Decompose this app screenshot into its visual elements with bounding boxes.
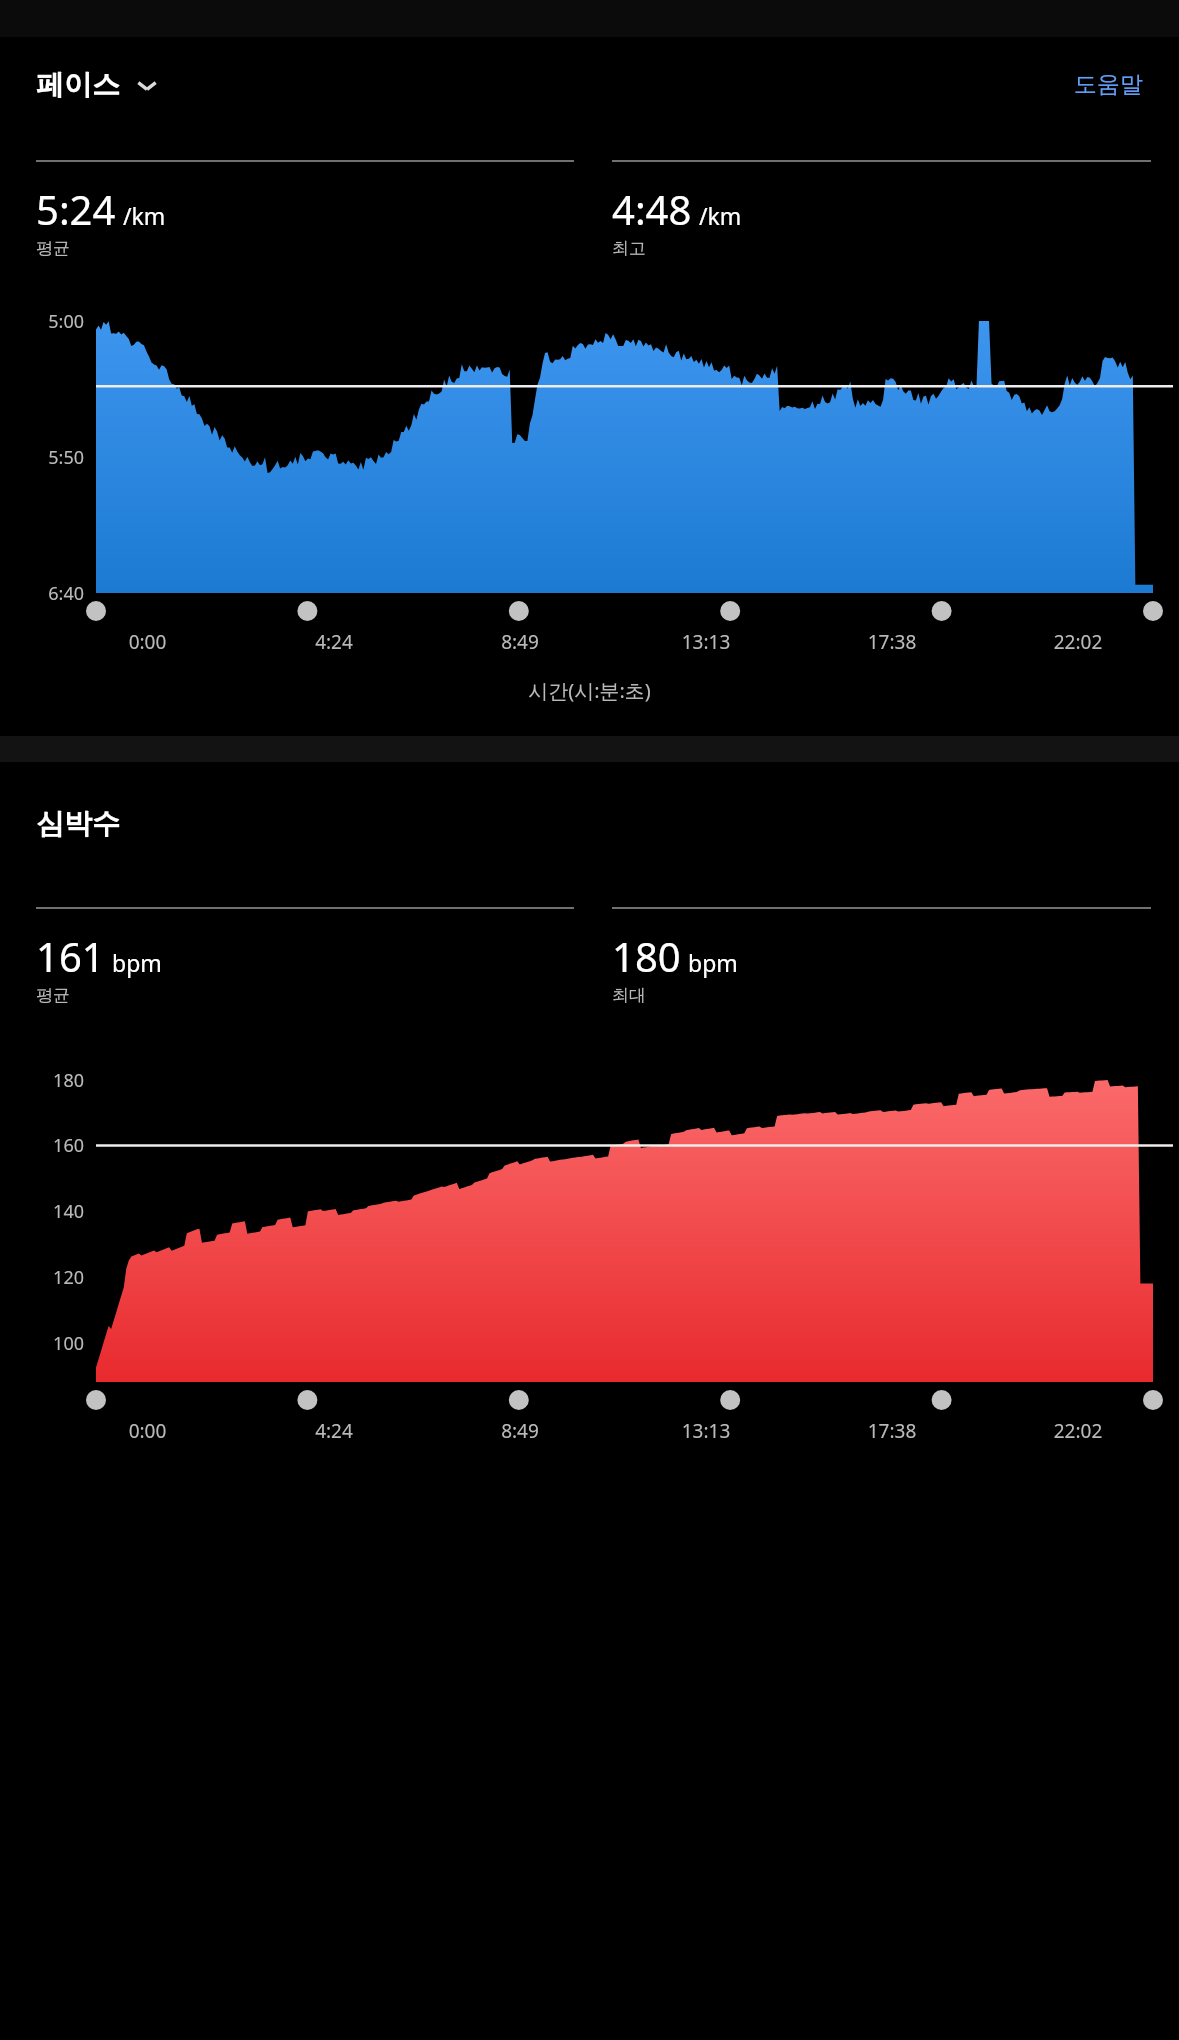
button[interactable]: 페이스 xyxy=(36,61,159,108)
staticText: 최고 xyxy=(612,238,646,259)
staticText: 도움말 xyxy=(1074,70,1143,99)
staticText: 13:13 xyxy=(613,629,799,655)
button[interactable]: 180 xyxy=(612,907,1151,1006)
staticText: 4:24 xyxy=(241,629,427,655)
staticText: 17:38 xyxy=(799,629,985,655)
staticText: 8:49 xyxy=(427,1418,613,1444)
staticText: 4:24 xyxy=(241,1418,427,1444)
staticText: 13:13 xyxy=(613,1418,799,1444)
staticText: 5:24 xyxy=(36,182,116,236)
button[interactable]: 심박수 xyxy=(36,802,120,845)
staticText: 0:00 xyxy=(54,629,241,655)
staticText: 평균 xyxy=(36,985,70,1006)
other: Change metric xyxy=(135,73,159,97)
staticText: 120 xyxy=(0,1265,84,1290)
button[interactable]: 4:48 xyxy=(612,160,1151,259)
button[interactable]: 161 xyxy=(36,907,574,1006)
staticText: 17:38 xyxy=(799,1418,985,1444)
staticText: 180 xyxy=(612,929,681,983)
staticText: 4:48 xyxy=(612,182,692,236)
staticText: bpm xyxy=(688,947,738,978)
staticText: /km xyxy=(123,200,166,231)
button[interactable]: 5:24 xyxy=(36,160,574,259)
staticText: 최대 xyxy=(612,985,646,1006)
staticText: 140 xyxy=(0,1199,84,1224)
staticText: 100 xyxy=(0,1331,84,1356)
staticText: 평균 xyxy=(36,238,70,259)
staticText: 5:00 xyxy=(0,309,84,334)
staticText: 8:49 xyxy=(427,629,613,655)
staticText: 180 xyxy=(0,1068,84,1093)
button[interactable]: 도움말 xyxy=(1066,62,1151,107)
staticText: 심박수 xyxy=(36,806,120,841)
staticText: 22:02 xyxy=(985,629,1171,655)
staticText: bpm xyxy=(112,947,162,978)
staticText: 160 xyxy=(0,1133,84,1158)
staticText: 0:00 xyxy=(54,1418,241,1444)
staticText: 6:40 xyxy=(0,581,84,606)
staticText: 22:02 xyxy=(985,1418,1171,1444)
staticText: 페이스 xyxy=(36,67,120,102)
staticText: 5:50 xyxy=(0,445,84,470)
staticText: 161 xyxy=(36,929,105,983)
staticText: 시간(시:분:초) xyxy=(0,677,1179,704)
staticText: /km xyxy=(699,200,742,231)
